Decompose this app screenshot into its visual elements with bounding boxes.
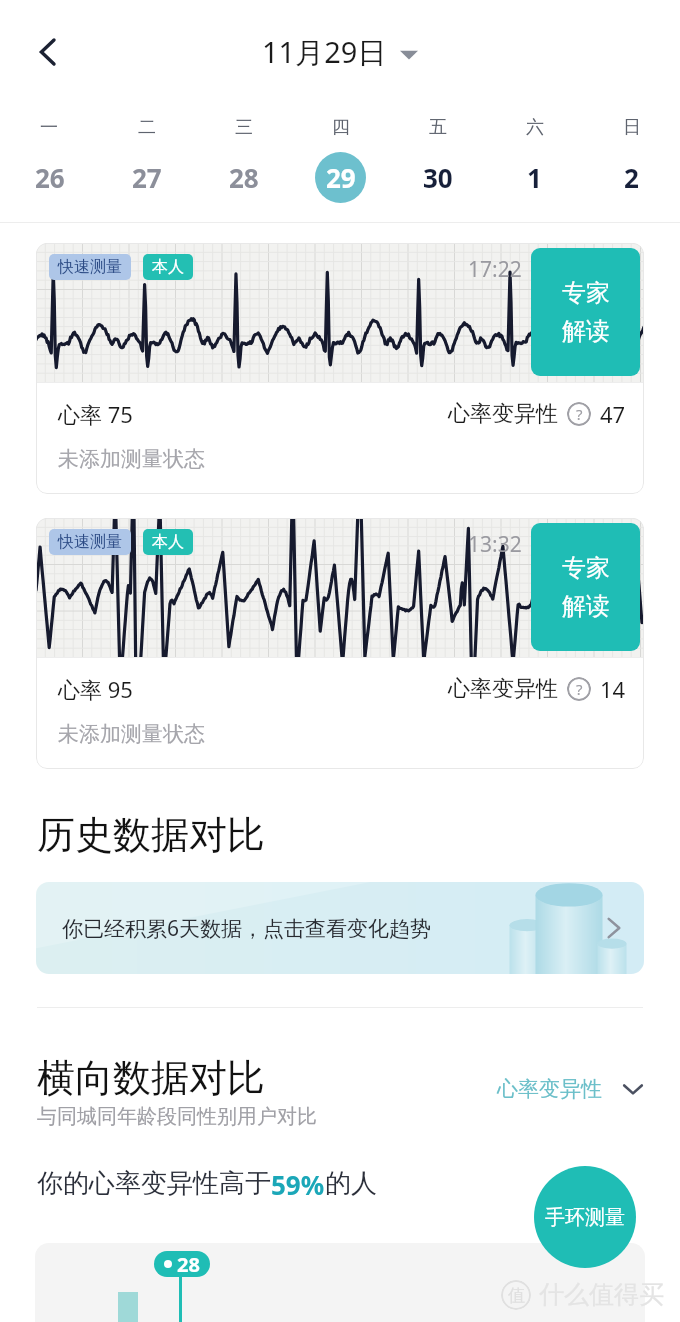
staticText: 一: [40, 116, 58, 139]
button[interactable]: 28: [154, 1251, 210, 1277]
staticText: 28: [229, 160, 259, 195]
button[interactable]: 五: [389, 104, 486, 222]
staticText: 日: [623, 116, 641, 139]
staticText: 你已经积累6天数据，点击查看变化趋势: [62, 914, 432, 943]
staticText: 五: [429, 116, 447, 139]
staticText: 专家 解读: [562, 278, 610, 347]
staticText: 六: [526, 116, 544, 139]
staticText: 30: [423, 160, 453, 195]
staticText: 历史数据对比: [37, 811, 265, 859]
staticText: 2: [624, 160, 639, 195]
staticText: 26: [35, 160, 65, 195]
staticText: 什么值得买: [539, 1279, 664, 1310]
staticText: 二: [138, 116, 156, 139]
staticText: 心率变异性: [497, 1076, 602, 1102]
staticText: 的人: [325, 1167, 377, 1200]
staticText: 17:22: [468, 255, 522, 284]
staticText: ?: [576, 679, 583, 699]
staticText: 本人: [152, 257, 184, 277]
button[interactable]: 快速测量: [36, 518, 644, 769]
staticText: ?: [576, 404, 583, 424]
button[interactable]: Back: [20, 24, 76, 80]
staticText: 手环测量: [545, 1205, 625, 1230]
button[interactable]: 专家 解读: [531, 248, 640, 376]
staticText: 14: [600, 674, 626, 704]
staticText: 心率 75: [58, 399, 133, 429]
staticText: 47: [600, 399, 626, 429]
staticText: 横向数据对比: [37, 1054, 265, 1102]
staticText: 值: [508, 1285, 525, 1306]
staticText: 心率变异性: [448, 400, 558, 428]
staticText: 未添加测量状态: [58, 721, 205, 747]
staticText: 27: [132, 160, 162, 195]
staticText: 本人: [152, 532, 184, 552]
staticText: 四: [332, 116, 350, 139]
button[interactable]: 快速测量: [36, 243, 644, 494]
staticText: 心率 95: [58, 674, 133, 704]
button[interactable]: 心率变异性: [497, 1076, 644, 1102]
button[interactable]: 你已经积累6天数据，点击查看变化趋势: [36, 882, 644, 974]
staticText: 11月29日: [262, 32, 387, 72]
staticText: 快速测量: [58, 532, 122, 552]
staticText: 13:32: [468, 530, 522, 559]
button[interactable]: 本人: [152, 257, 184, 277]
staticText: 29: [326, 160, 356, 195]
button[interactable]: 二: [98, 104, 195, 222]
button[interactable]: 四: [292, 104, 389, 222]
button[interactable]: 六: [486, 104, 583, 222]
button[interactable]: 专家 解读: [531, 523, 640, 651]
staticText: 你的心率变异性高于: [37, 1167, 271, 1200]
staticText: 快速测量: [58, 257, 122, 277]
button[interactable]: 快速测量: [58, 257, 122, 277]
button[interactable]: 三: [195, 104, 292, 222]
staticText: 1: [527, 160, 542, 195]
staticText: 专家 解读: [562, 553, 610, 622]
staticText: 与同城同年龄段同性别用户对比: [37, 1104, 317, 1129]
button[interactable]: 日: [583, 104, 680, 222]
button[interactable]: 本人: [152, 532, 184, 552]
staticText: 59%: [271, 1167, 325, 1202]
staticText: 未添加测量状态: [58, 446, 205, 472]
staticText: 28: [177, 1251, 200, 1277]
button[interactable]: 手环测量: [534, 1166, 636, 1268]
button[interactable]: 11月29日: [262, 32, 418, 72]
staticText: 三: [235, 116, 253, 139]
button[interactable]: 快速测量: [58, 532, 122, 552]
button[interactable]: 一: [0, 104, 98, 222]
staticText: 心率变异性: [448, 675, 558, 703]
